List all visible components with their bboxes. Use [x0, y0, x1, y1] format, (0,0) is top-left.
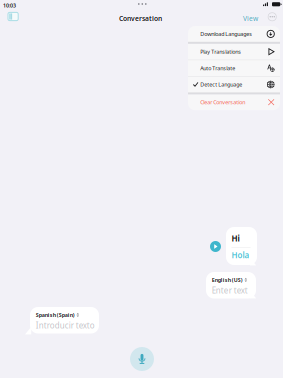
- staticText: View: [243, 14, 258, 23]
- staticText: Enter text: [212, 285, 248, 296]
- button[interactable]: More options: [268, 13, 276, 21]
- staticText: 10:03: [3, 2, 16, 9]
- button[interactable]: Clear Conversation: [188, 94, 280, 110]
- staticText: Spanish (Spain): [36, 311, 75, 319]
- button[interactable]: Record: [130, 347, 154, 371]
- staticText: Auto Translate: [200, 65, 235, 72]
- staticText: Play Translations: [200, 48, 241, 55]
- staticText: English (US): [212, 276, 243, 284]
- staticText: Download Languages: [200, 30, 252, 37]
- button[interactable]: View: [243, 14, 258, 23]
- button[interactable]: English (US): [206, 272, 256, 298]
- staticText: Hi: [231, 233, 239, 244]
- staticText: Clear Conversation: [200, 99, 245, 106]
- button[interactable]: Play translation: [210, 241, 221, 252]
- button[interactable]: Auto Translate: [188, 60, 280, 76]
- staticText: Hola: [231, 250, 249, 260]
- staticText: Conversation: [119, 14, 162, 23]
- button[interactable]: Download Languages: [188, 26, 280, 42]
- staticText: Introducir texto: [36, 320, 95, 331]
- button[interactable]: Show sidebar: [8, 12, 18, 21]
- button[interactable]: Spanish (Spain): [30, 307, 99, 333]
- button[interactable]: Detect Language: [188, 77, 280, 92]
- button[interactable]: Play Translations: [188, 44, 280, 60]
- staticText: Detect Language: [200, 81, 242, 88]
